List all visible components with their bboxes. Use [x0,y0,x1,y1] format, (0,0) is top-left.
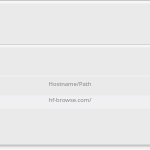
staticText: hf-browse.com/ [0,96,140,104]
button[interactable]: hf-browse.com/ [0,95,150,108]
staticText: Hostname/Path [0,80,140,88]
